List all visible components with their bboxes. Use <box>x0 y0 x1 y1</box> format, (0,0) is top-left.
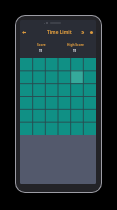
staticText: Time Limit <box>47 29 72 35</box>
button[interactable] <box>83 109 96 122</box>
button[interactable] <box>44 70 57 83</box>
button[interactable] <box>32 122 44 135</box>
button[interactable]: Settings <box>86 26 96 38</box>
button[interactable] <box>20 109 32 122</box>
button[interactable] <box>44 58 57 70</box>
button[interactable] <box>20 122 32 135</box>
button[interactable] <box>57 122 70 135</box>
button[interactable] <box>32 58 44 70</box>
button[interactable] <box>70 70 83 83</box>
button[interactable] <box>83 58 96 70</box>
button[interactable] <box>83 70 96 83</box>
button[interactable] <box>83 96 96 109</box>
button[interactable] <box>57 83 70 96</box>
staticText: High Score <box>67 43 84 47</box>
button[interactable] <box>57 70 70 83</box>
button[interactable] <box>32 70 44 83</box>
button[interactable]: Score <box>24 37 58 53</box>
button[interactable] <box>32 109 44 122</box>
button[interactable] <box>70 58 83 70</box>
button[interactable] <box>57 58 70 70</box>
button[interactable] <box>83 122 96 135</box>
button[interactable]: High Score <box>58 37 92 53</box>
button[interactable] <box>44 109 57 122</box>
button[interactable] <box>44 122 57 135</box>
button[interactable] <box>20 83 32 96</box>
button[interactable] <box>32 83 44 96</box>
button[interactable] <box>70 96 83 109</box>
button[interactable] <box>44 83 57 96</box>
button[interactable] <box>20 96 32 109</box>
button[interactable] <box>57 109 70 122</box>
button[interactable]: Back <box>20 26 31 38</box>
button[interactable] <box>83 83 96 96</box>
button[interactable] <box>70 109 83 122</box>
staticText: Score <box>37 43 46 47</box>
button[interactable] <box>32 96 44 109</box>
button[interactable]: Sound <box>77 26 87 38</box>
button[interactable] <box>44 96 57 109</box>
staticText: 11 <box>73 49 77 53</box>
button[interactable] <box>57 96 70 109</box>
button[interactable] <box>70 122 83 135</box>
button[interactable] <box>70 83 83 96</box>
staticText: 11 <box>39 49 43 53</box>
button[interactable] <box>20 70 32 83</box>
